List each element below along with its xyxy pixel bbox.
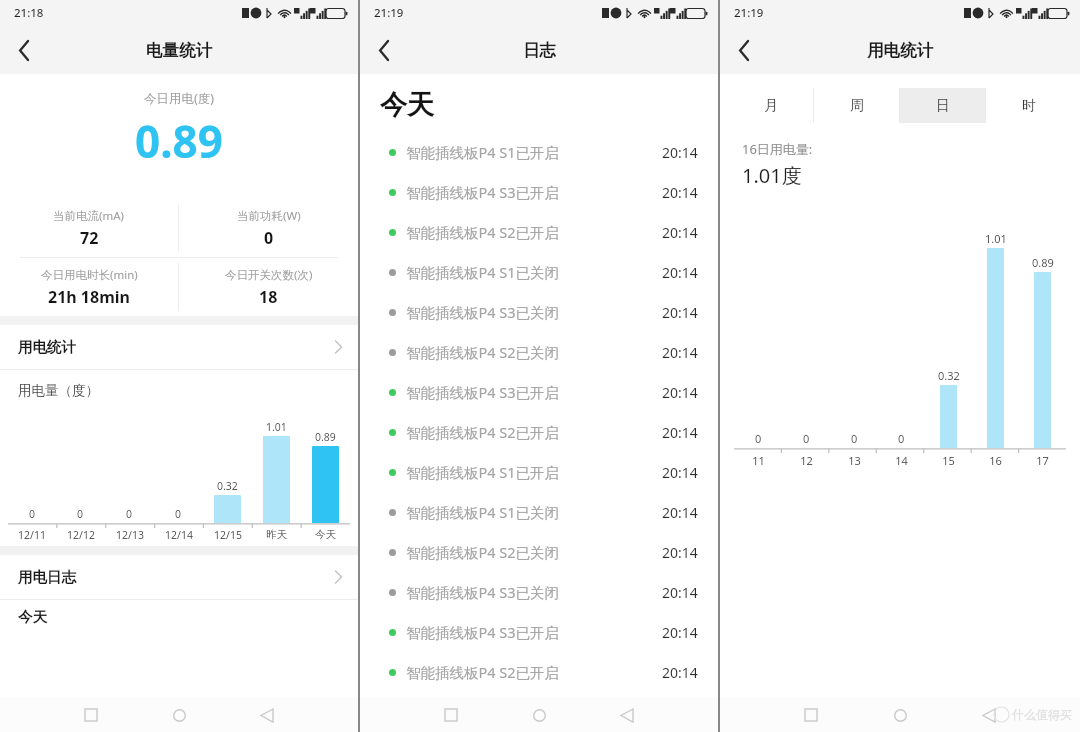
staticText: 时 [1022, 97, 1036, 115]
button[interactable]: Home [883, 698, 917, 732]
button[interactable]: Recents [74, 698, 108, 732]
staticText: 智能插线板P4 S2已开启 [406, 222, 560, 242]
staticText: 智能插线板P4 S3已开启 [406, 382, 560, 402]
button[interactable]: Back [0, 26, 48, 74]
staticText: 智能插线板P4 S2已开启 [406, 662, 560, 682]
button[interactable]: 智能插线板P4 S2已关闭 [360, 532, 718, 572]
staticText: 日 [936, 97, 950, 115]
staticText: 0.89 [1032, 255, 1054, 270]
staticText: 11 [752, 453, 765, 468]
staticText: 1.01度 [742, 162, 802, 189]
staticText: 12/11 [18, 528, 46, 542]
staticText: 14 [895, 453, 908, 468]
staticText: 今天 [315, 528, 336, 541]
staticText: 0.32 [217, 479, 238, 493]
staticText: 智能插线板P4 S3已关闭 [406, 302, 560, 322]
button[interactable]: Back [610, 698, 644, 732]
button[interactable]: 智能插线板P4 S3已关闭 [360, 292, 718, 332]
staticText: 什么值得买 [1012, 707, 1072, 722]
button[interactable]: 日 [900, 88, 985, 123]
staticText: 智能插线板P4 S3已开启 [406, 622, 560, 642]
staticText: 12 [800, 453, 813, 468]
staticText: 0 [77, 507, 84, 521]
staticText: 0 [755, 431, 762, 446]
staticText: 0 [126, 507, 133, 521]
button[interactable]: 时 [986, 88, 1071, 123]
staticText: 20:14 [662, 263, 698, 282]
staticText: 智能插线板P4 S2已关闭 [406, 542, 560, 562]
staticText: 用电日志 [18, 568, 76, 586]
staticText: 12/14 [165, 528, 193, 542]
staticText: 0.32 [938, 368, 960, 383]
button[interactable]: Recents [794, 698, 828, 732]
staticText: 18 [259, 286, 278, 308]
button[interactable]: 智能插线板P4 S1已关闭 [360, 492, 718, 532]
button[interactable]: Back [250, 698, 284, 732]
button[interactable]: Back [360, 26, 408, 74]
staticText: 16 [989, 453, 1002, 468]
button[interactable]: 周 [814, 88, 899, 123]
staticText: 智能插线板P4 S2已关闭 [406, 342, 560, 362]
button[interactable]: 智能插线板P4 S1已开启 [360, 132, 718, 172]
staticText: 智能插线板P4 S1已关闭 [406, 502, 560, 522]
staticText: 0.89 [135, 111, 223, 171]
staticText: 17 [1036, 453, 1049, 468]
staticText: 智能插线板P4 S1已开启 [406, 142, 560, 162]
staticText: 0 [898, 431, 905, 446]
staticText: 0 [175, 507, 182, 521]
staticText: 用电统计 [18, 338, 76, 356]
button[interactable]: 智能插线板P4 S2已开启 [360, 412, 718, 452]
staticText: 20:14 [662, 503, 698, 522]
staticText: 12/15 [214, 528, 242, 542]
staticText: 今日开关次数(次) [225, 267, 313, 283]
button[interactable]: 智能插线板P4 S3已开启 [360, 372, 718, 412]
button[interactable]: 智能插线板P4 S1已关闭 [360, 252, 718, 292]
staticText: 20:14 [662, 663, 698, 682]
staticText: 20:14 [662, 623, 698, 642]
button[interactable]: 智能插线板P4 S3已开启 [360, 612, 718, 652]
staticText: 今日用电(度) [144, 90, 215, 107]
staticText: 20:14 [662, 143, 698, 162]
button[interactable]: 智能插线板P4 S3已关闭 [360, 572, 718, 612]
button[interactable]: Home [162, 698, 196, 732]
staticText: 20:14 [662, 223, 698, 242]
button[interactable]: 用电统计 [0, 325, 358, 369]
staticText: 周 [850, 97, 864, 115]
staticText: 当前电流(mA) [53, 208, 125, 224]
staticText: 今天 [380, 88, 434, 122]
button[interactable]: Back [972, 698, 1006, 732]
staticText: 智能插线板P4 S2已开启 [406, 422, 560, 442]
staticText: 20:14 [662, 383, 698, 402]
staticText: 智能插线板P4 S1已开启 [406, 462, 560, 482]
button[interactable]: Recents [434, 698, 468, 732]
staticText: 20:14 [662, 463, 698, 482]
staticText: 20:14 [662, 543, 698, 562]
staticText: 20:14 [662, 583, 698, 602]
staticText: 20:14 [662, 423, 698, 442]
button[interactable]: Home [522, 698, 556, 732]
staticText: 今日用电时长(min) [41, 267, 138, 283]
staticText: 21:19 [734, 5, 764, 21]
button[interactable]: 智能插线板P4 S2已开启 [360, 652, 718, 692]
button[interactable]: Back [720, 26, 768, 74]
button[interactable]: 智能插线板P4 S2已开启 [360, 212, 718, 252]
staticText: 用电统计 [867, 40, 933, 61]
staticText: 15 [942, 453, 955, 468]
staticText: 13 [848, 453, 861, 468]
button[interactable]: 智能插线板P4 S1已开启 [360, 452, 718, 492]
staticText: 0.89 [315, 430, 336, 444]
staticText: 1.01 [266, 420, 287, 434]
staticText: 21:19 [374, 5, 404, 21]
staticText: 今天 [18, 608, 47, 626]
staticText: 日志 [523, 40, 556, 61]
staticText: 月 [764, 97, 778, 115]
staticText: 16日用电量: [742, 140, 813, 158]
staticText: 20:14 [662, 183, 698, 202]
button[interactable]: 智能插线板P4 S2已关闭 [360, 332, 718, 372]
button[interactable]: 智能插线板P4 S3已开启 [360, 172, 718, 212]
staticText: 12/13 [116, 528, 144, 542]
staticText: 1.01 [985, 231, 1007, 246]
button[interactable]: 用电日志 [0, 555, 358, 599]
staticText: 0 [264, 227, 274, 249]
button[interactable]: 月 [729, 88, 813, 123]
